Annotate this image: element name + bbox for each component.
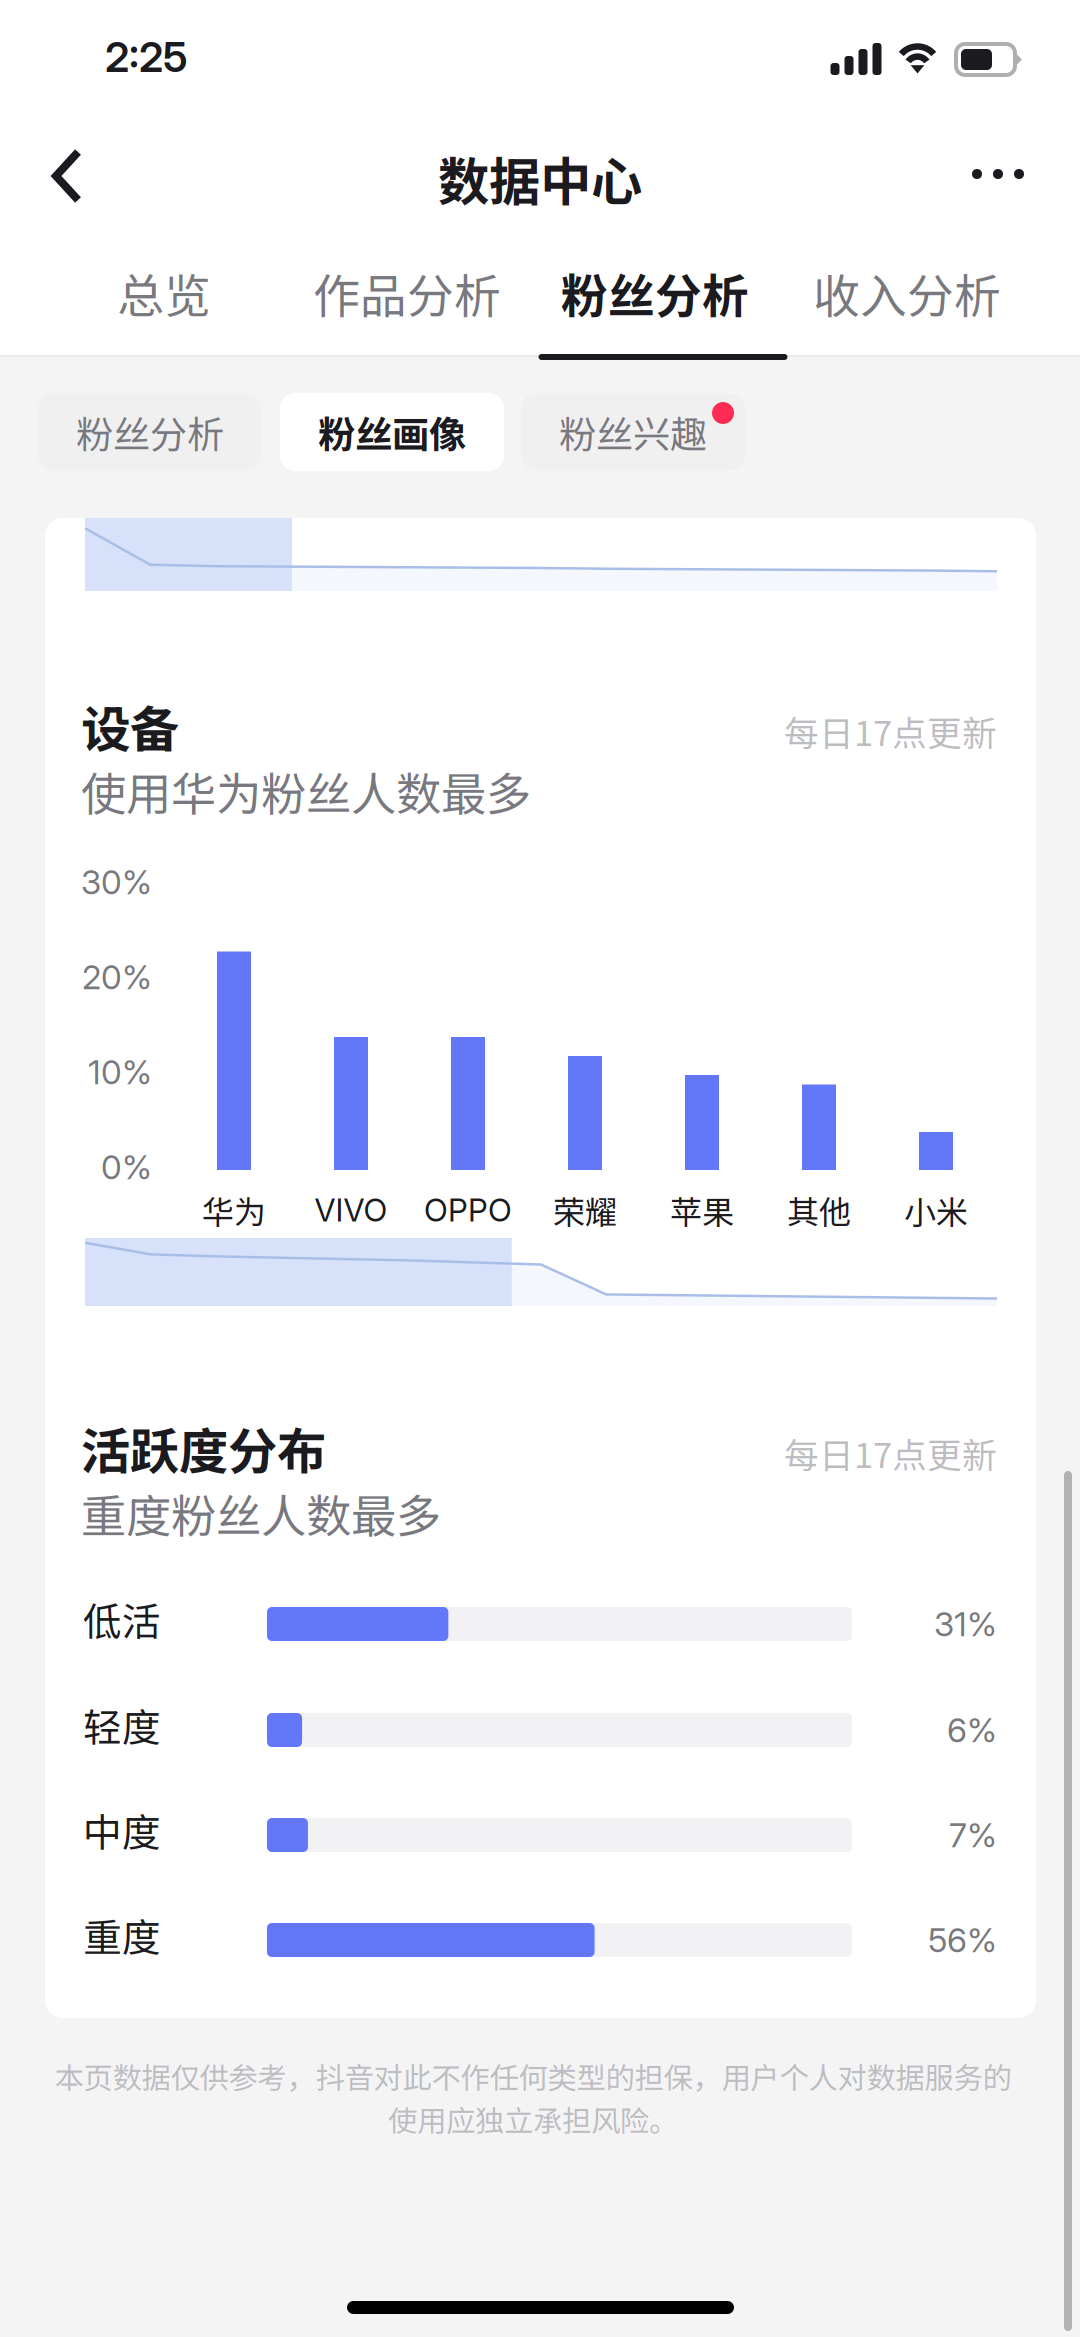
staticText: 20% — [82, 957, 152, 997]
staticText: 低活 — [83, 1591, 161, 1647]
button[interactable]: 粉丝分析 — [38, 393, 262, 471]
staticText: 31% — [934, 1604, 997, 1644]
staticText: 每日17点更新 — [784, 1428, 997, 1478]
staticText: 重度粉丝人数最多 — [81, 1480, 441, 1546]
staticText: 设备 — [81, 690, 179, 762]
staticText: 小米 — [904, 1187, 968, 1233]
button[interactable]: 粉丝分析 — [530, 262, 780, 358]
staticText: 粉丝兴趣 — [559, 405, 707, 459]
button[interactable]: 收入分析 — [782, 262, 1032, 358]
staticText: 活跃度分布 — [81, 1412, 326, 1484]
staticText: 收入分析 — [813, 259, 1001, 327]
staticText: 10% — [88, 1052, 152, 1092]
staticText: 30% — [81, 862, 152, 902]
button[interactable]: 总览 — [39, 262, 289, 358]
staticText: 56% — [928, 1920, 997, 1960]
staticText: 荣耀 — [553, 1187, 617, 1233]
staticText: 使用应独立承担风险。 — [388, 2098, 678, 2140]
staticText: 粉丝分析 — [76, 405, 224, 459]
staticText: 苹果 — [670, 1187, 734, 1233]
button[interactable]: More — [942, 122, 1054, 226]
button[interactable]: Back — [15, 124, 119, 228]
staticText: 使用华为粉丝人数最多 — [81, 758, 531, 824]
staticText: VIVO — [314, 1191, 387, 1229]
staticText: 中度 — [83, 1802, 161, 1858]
button[interactable]: 作品分析 — [282, 262, 532, 358]
button[interactable]: 粉丝画像 — [280, 393, 504, 471]
staticText: 粉丝分析 — [561, 259, 749, 327]
staticText: OPPO — [424, 1191, 512, 1229]
staticText: 总览 — [117, 259, 211, 327]
staticText: 数据中心 — [438, 141, 642, 215]
staticText: 本页数据仅供参考，抖音对此不作任何类型的担保，用户个人对数据服务的 — [54, 2055, 1011, 2097]
staticText: 轻度 — [83, 1697, 161, 1753]
staticText: 其他 — [787, 1187, 851, 1233]
staticText: 作品分析 — [313, 259, 501, 327]
staticText: 0% — [101, 1147, 152, 1187]
staticText: 6% — [947, 1710, 997, 1750]
staticText: 粉丝画像 — [318, 405, 466, 459]
button[interactable]: 粉丝兴趣 — [521, 393, 745, 471]
staticText: 华为 — [202, 1187, 266, 1233]
staticText: 2:25 — [105, 32, 188, 82]
staticText: 重度 — [83, 1907, 161, 1963]
staticText: 7% — [949, 1815, 997, 1855]
staticText: 每日17点更新 — [784, 706, 997, 756]
